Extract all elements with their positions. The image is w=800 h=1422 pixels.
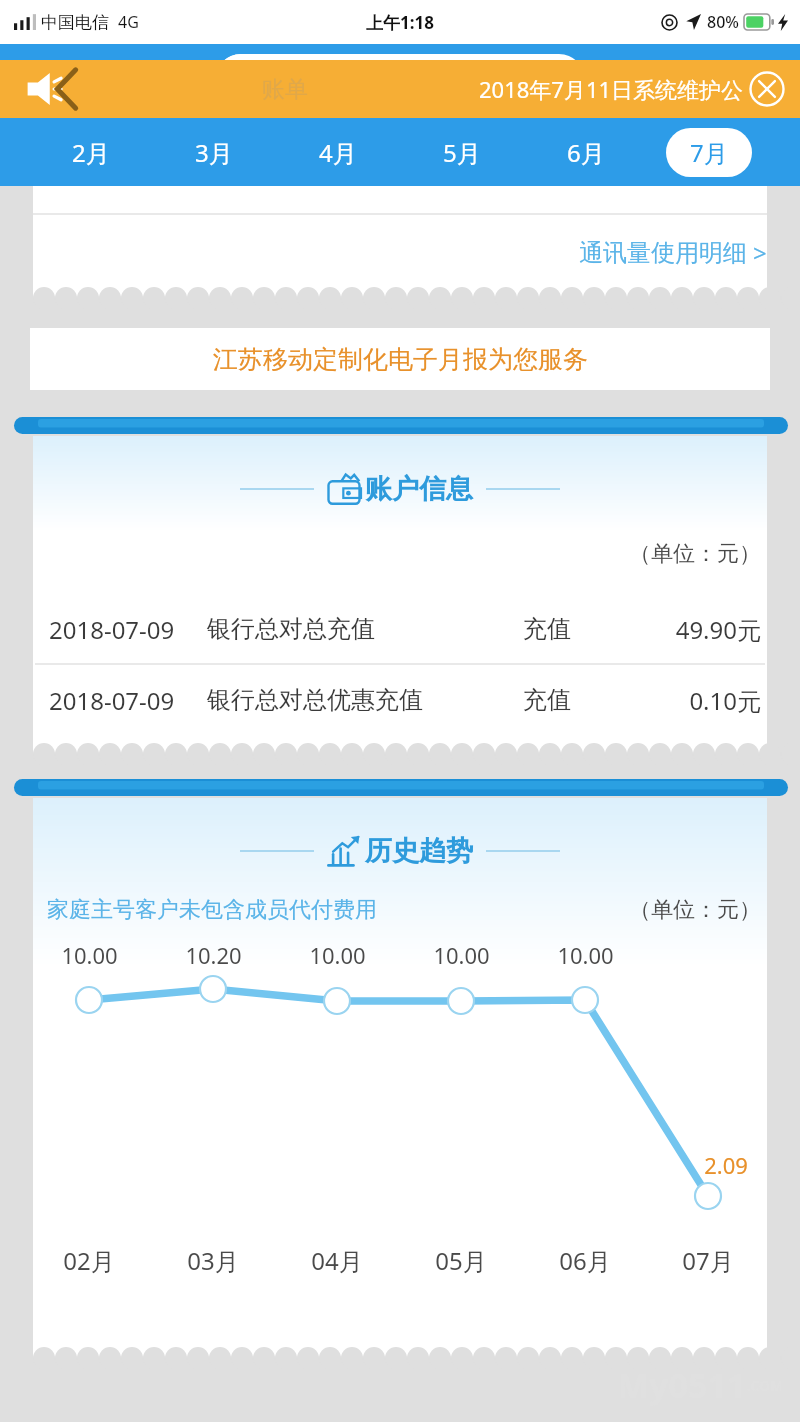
staticText: 2018-07-09 <box>49 684 175 717</box>
staticText: 2月 <box>72 136 110 169</box>
staticText: 账户信息 <box>365 472 473 506</box>
button[interactable] <box>215 54 585 106</box>
staticText: 上午1:18 <box>366 11 434 34</box>
staticText: 04月 <box>311 1244 363 1277</box>
staticText: 银行总对总充值 <box>207 614 375 644</box>
button[interactable]: 2月 <box>48 128 134 177</box>
staticText: 02月 <box>63 1244 115 1277</box>
staticText: 6月 <box>567 136 605 169</box>
staticText: 10.00 <box>557 940 614 970</box>
staticText: 49.90元 <box>629 613 761 646</box>
button[interactable]: 6月 <box>543 128 629 177</box>
button[interactable]: 7月 <box>666 128 752 177</box>
staticText: 7月 <box>690 136 728 169</box>
button[interactable]: 2018-07-09 <box>33 594 767 664</box>
staticText: 江苏移动定制化电子月报为您服务 <box>213 344 588 375</box>
staticText: 06月 <box>559 1244 611 1277</box>
staticText: > <box>753 236 767 269</box>
staticText: 家庭主号客户未包含成员代付费用 <box>47 896 377 924</box>
staticText: 10.00 <box>61 940 118 970</box>
staticText: 2018年7月11日系统维护公 <box>479 74 744 104</box>
staticText: 充值 <box>523 685 571 715</box>
button[interactable]: 3月 <box>171 128 257 177</box>
staticText: 账单 <box>262 75 308 104</box>
staticText: 2018-07-09 <box>49 613 175 646</box>
button[interactable]: Announcement <box>26 69 80 109</box>
button[interactable]: 4月 <box>295 128 381 177</box>
staticText: 80% <box>707 11 739 33</box>
staticText: （单位：元） <box>629 896 761 924</box>
staticText: 0.10元 <box>629 684 761 717</box>
staticText: 05月 <box>435 1244 487 1277</box>
staticText: 5月 <box>443 136 481 169</box>
button[interactable]: 通讯量使用明细 <box>579 236 767 269</box>
staticText: 历史趋势 <box>365 834 473 868</box>
staticText: 10.00 <box>309 940 366 970</box>
staticText: 充值 <box>523 614 571 644</box>
staticText: 银行总对总优惠充值 <box>207 685 423 715</box>
staticText: 2.09 <box>704 1150 748 1180</box>
staticText: 4G <box>118 11 139 33</box>
button[interactable]: Close <box>748 70 786 108</box>
staticText: 3月 <box>195 136 233 169</box>
staticText: 03月 <box>187 1244 239 1277</box>
staticText: 4月 <box>319 136 357 169</box>
staticText: 10.20 <box>185 940 242 970</box>
staticText: 07月 <box>682 1244 734 1277</box>
button[interactable]: 2018-07-09 <box>33 665 767 735</box>
button[interactable]: 江苏移动定制化电子月报为您服务 <box>30 328 770 390</box>
button[interactable]: 5月 <box>419 128 505 177</box>
staticText: 10.00 <box>433 940 490 970</box>
staticText: 通讯量使用明细 <box>579 238 747 268</box>
staticText: 中国电信 <box>41 12 109 33</box>
staticText: （单位：元） <box>33 540 761 568</box>
